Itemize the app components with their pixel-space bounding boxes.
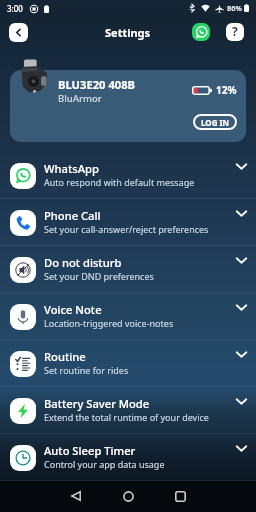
button[interactable] — [10, 70, 246, 142]
staticText: 86% — [227, 3, 242, 13]
button[interactable]: Back — [66, 486, 86, 506]
button[interactable]: LOG IN — [193, 114, 237, 130]
staticText: Auto Sleep Timer — [44, 443, 136, 458]
staticText: Phone Call — [44, 208, 101, 223]
button[interactable]: Help — [226, 23, 244, 41]
staticText: Settings — [105, 25, 151, 40]
staticText: BluArmor — [58, 92, 102, 105]
button[interactable]: Home — [118, 486, 138, 506]
button[interactable]: Routine — [0, 340, 256, 387]
button[interactable]: Voice Note — [0, 293, 256, 340]
staticText: Control your app data usage — [44, 458, 165, 470]
button[interactable]: Phone Call — [0, 199, 256, 246]
staticText: Battery Saver Mode — [44, 396, 150, 411]
staticText: Routine — [44, 349, 86, 364]
staticText: Location-triggered voice-notes — [44, 317, 174, 329]
button[interactable]: WhatsApp — [0, 152, 256, 199]
button[interactable]: Recents — [170, 486, 190, 506]
staticText: Set your DND preferences — [44, 270, 154, 282]
staticText: BLU3E20 408B — [58, 77, 136, 92]
button[interactable]: Back — [9, 23, 28, 42]
staticText: 3:00 — [7, 3, 23, 14]
staticText: Set your call-answer/reject preferences — [44, 223, 209, 235]
staticText: Do not disturb — [44, 255, 122, 270]
staticText: Auto respond with default message — [44, 176, 195, 188]
button[interactable]: Battery Saver Mode — [0, 387, 256, 434]
staticText: LOG IN — [201, 117, 230, 128]
button[interactable]: WhatsApp — [192, 23, 210, 41]
staticText: WhatsApp — [44, 161, 99, 176]
staticText: Voice Note — [44, 302, 102, 317]
staticText: 12% — [216, 83, 237, 97]
button[interactable]: Do not disturb — [0, 246, 256, 293]
staticText: Extend the total runtime of your device — [44, 411, 209, 423]
staticText: Set routine for rides — [44, 364, 129, 376]
staticText: ? — [232, 23, 238, 39]
button[interactable]: Auto Sleep Timer — [0, 434, 256, 481]
